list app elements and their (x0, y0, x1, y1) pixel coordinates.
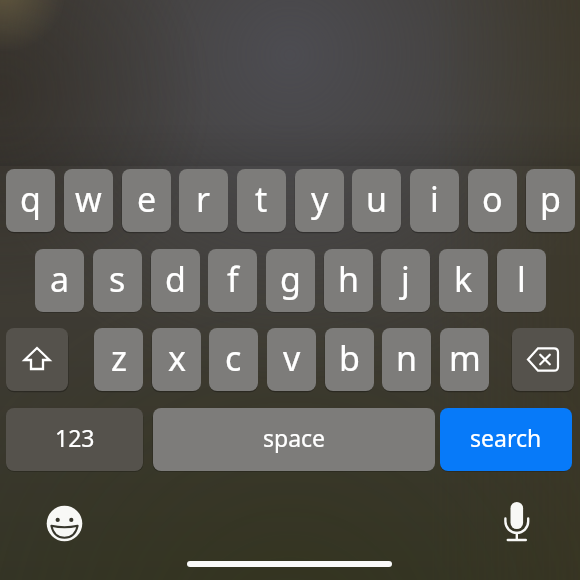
staticText: o (482, 176, 503, 222)
staticText: x (168, 335, 186, 381)
button[interactable]: r (179, 169, 228, 232)
button[interactable]: n (382, 328, 431, 391)
button[interactable] (494, 499, 539, 544)
button[interactable]: y (295, 169, 344, 232)
button[interactable]: e (122, 169, 171, 232)
button[interactable]: space (153, 408, 435, 471)
button[interactable]: 123 (6, 408, 143, 471)
button[interactable]: x (152, 328, 201, 391)
button[interactable]: l (497, 249, 546, 312)
button[interactable] (6, 328, 68, 391)
button[interactable]: o (468, 169, 517, 232)
button[interactable]: k (439, 249, 488, 312)
button[interactable]: s (93, 249, 142, 312)
staticText: n (396, 335, 418, 381)
staticText: t (255, 176, 268, 222)
button[interactable]: m (440, 328, 489, 391)
staticText: r (196, 176, 211, 222)
staticText: e (137, 176, 157, 222)
button[interactable]: g (266, 249, 315, 312)
button[interactable]: t (237, 169, 286, 232)
button[interactable]: h (324, 249, 373, 312)
staticText: d (165, 256, 186, 302)
staticText: p (540, 176, 561, 222)
staticText: v (283, 335, 301, 381)
staticText: a (50, 256, 70, 302)
button[interactable]: p (526, 169, 575, 232)
staticText: k (454, 256, 473, 302)
button[interactable]: j (381, 249, 430, 312)
staticText: s (109, 256, 126, 302)
staticText: i (430, 176, 439, 222)
button[interactable]: u (352, 169, 401, 232)
staticText: q (20, 176, 41, 222)
staticText: m (449, 335, 481, 381)
staticText: space (263, 422, 326, 453)
staticText: search (470, 422, 542, 453)
button[interactable]: d (151, 249, 200, 312)
staticText: c (225, 335, 242, 381)
staticText: j (401, 256, 410, 302)
button[interactable]: z (94, 328, 143, 391)
staticText: z (111, 335, 127, 381)
button[interactable]: c (209, 328, 258, 391)
button[interactable] (42, 501, 87, 546)
button[interactable] (512, 328, 574, 391)
staticText: h (338, 256, 360, 302)
staticText: l (517, 256, 526, 302)
staticText: u (366, 176, 388, 222)
button[interactable]: v (267, 328, 316, 391)
button[interactable]: i (410, 169, 459, 232)
button[interactable]: a (35, 249, 84, 312)
button[interactable]: search (440, 408, 572, 471)
staticText: 123 (55, 422, 95, 453)
staticText: b (339, 335, 360, 381)
button[interactable]: w (64, 169, 113, 232)
button[interactable]: f (208, 249, 257, 312)
staticText: f (227, 256, 239, 302)
button[interactable]: b (325, 328, 374, 391)
button[interactable]: q (6, 169, 55, 232)
staticText: g (280, 256, 301, 302)
staticText: w (75, 176, 102, 222)
staticText: y (311, 176, 329, 222)
